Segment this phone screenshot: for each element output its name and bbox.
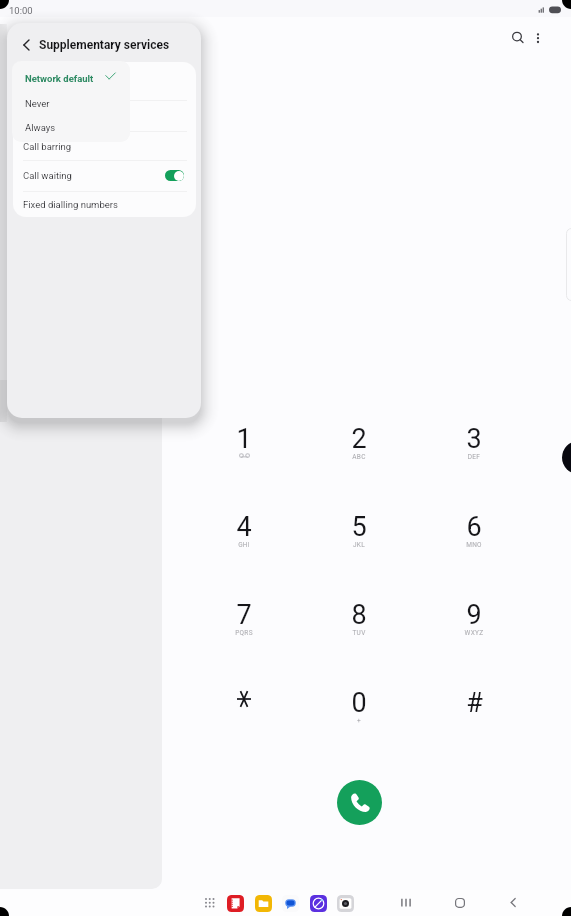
staticText: # xyxy=(466,687,483,719)
button[interactable]: 5 xyxy=(315,510,403,574)
button[interactable]: More options xyxy=(527,28,549,50)
button[interactable]: Recent apps xyxy=(395,892,417,914)
button[interactable]: Never xyxy=(12,91,130,115)
button[interactable]: Back xyxy=(503,892,525,914)
button[interactable]: 0 xyxy=(315,686,403,750)
button[interactable] xyxy=(200,686,288,750)
button[interactable]: Search xyxy=(507,27,529,49)
button[interactable]: Call forwarding xyxy=(13,62,196,100)
staticText: DEF xyxy=(430,453,518,461)
button[interactable]: Call waiting xyxy=(13,160,196,190)
button[interactable]: 1 xyxy=(200,422,288,486)
staticText: 0 xyxy=(351,687,367,719)
staticText: 4 xyxy=(236,511,252,543)
button[interactable]: Camera xyxy=(335,893,356,914)
button[interactable]: Samsung Notes xyxy=(225,893,246,914)
button[interactable]: Navigate up xyxy=(16,34,38,56)
staticText: Never xyxy=(25,98,50,109)
staticText: Call barring xyxy=(23,141,72,152)
staticText: 1 xyxy=(236,423,252,455)
button[interactable]: Apps xyxy=(200,893,220,913)
button[interactable]: Network default xyxy=(12,66,130,90)
button[interactable]: 6 xyxy=(430,510,518,574)
button[interactable]: Home xyxy=(449,892,471,914)
staticText: TUV xyxy=(315,629,403,637)
button[interactable]: 2 xyxy=(315,422,403,486)
staticText: PQRS xyxy=(200,629,288,637)
staticText: 6 xyxy=(466,511,482,543)
staticText: MNO xyxy=(430,541,518,549)
button[interactable]: # xyxy=(430,686,518,750)
staticText: Fixed dialling numbers xyxy=(23,199,118,210)
button[interactable] xyxy=(165,170,184,181)
button[interactable]: 3 xyxy=(430,422,518,486)
button[interactable]: 8 xyxy=(315,598,403,662)
staticText: 9 xyxy=(466,599,482,631)
button[interactable]: Always xyxy=(12,115,130,139)
staticText: GHI xyxy=(200,541,288,549)
staticText: Always xyxy=(25,122,56,133)
button[interactable]: 7 xyxy=(200,598,288,662)
staticText: 3 xyxy=(466,423,482,455)
staticText: JKL xyxy=(315,541,403,549)
staticText: 8 xyxy=(351,599,367,631)
button[interactable]: Internet xyxy=(308,893,329,914)
button[interactable]: 9 xyxy=(430,598,518,662)
staticText: 7 xyxy=(236,599,252,631)
staticText: 5 xyxy=(351,511,367,543)
staticText: Network default xyxy=(25,73,94,84)
button[interactable]: Call barring xyxy=(13,131,196,161)
staticText: Call forwarding xyxy=(23,76,88,87)
button[interactable]: Floating bubble xyxy=(562,441,571,474)
staticText: 2 xyxy=(351,423,367,455)
staticText: WXYZ xyxy=(430,629,518,637)
button[interactable]: My Files xyxy=(253,893,274,914)
staticText: Call waiting xyxy=(23,170,72,181)
button[interactable]: Messages xyxy=(280,893,301,914)
button[interactable]: Call xyxy=(337,780,382,825)
staticText: Supplementary services xyxy=(39,38,170,52)
button[interactable]: Show caller ID xyxy=(13,100,196,131)
button[interactable]: Fixed dialling numbers xyxy=(13,191,196,217)
button[interactable]: 4 xyxy=(200,510,288,574)
staticText: ABC xyxy=(315,453,403,461)
staticText: 10:00 xyxy=(9,5,33,16)
staticText: + xyxy=(315,717,403,725)
